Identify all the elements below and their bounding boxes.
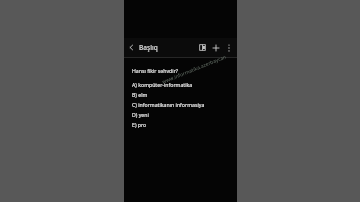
button[interactable]: Reader view [196, 38, 209, 57]
staticText: B) elm [132, 91, 148, 98]
staticText: Hansı fikir səhvdir? [132, 67, 179, 74]
staticText: D) yeni [132, 111, 149, 118]
button[interactable]: Back [124, 38, 139, 57]
button[interactable]: Add [209, 38, 222, 57]
button[interactable]: More options [222, 38, 235, 57]
staticText: C) informatikanın informasiya [132, 101, 205, 108]
staticText: A) kompüter-informatika [132, 81, 193, 88]
staticText: E) pro [132, 121, 147, 128]
staticText: Başlıq [139, 43, 158, 52]
staticText: www.informatika.azerbaycan [161, 53, 228, 86]
